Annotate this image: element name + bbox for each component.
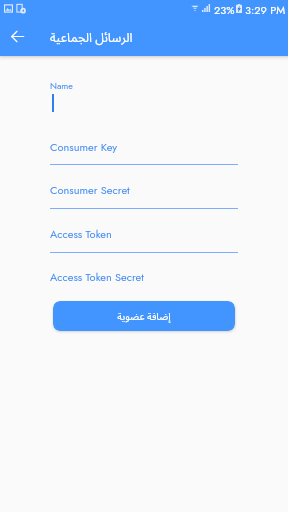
staticText: Name — [50, 79, 73, 92]
staticText: الرسائل الجماعية — [50, 29, 133, 46]
button[interactable]: Back — [3, 22, 31, 50]
staticText: Access Token — [50, 226, 112, 242]
staticText: Consumer Secret — [50, 182, 130, 198]
staticText: 3:29 PM — [245, 2, 286, 18]
staticText: 23% — [214, 2, 235, 18]
staticText: إضافة عضوية — [117, 309, 171, 323]
button[interactable]: إضافة عضوية — [53, 301, 235, 331]
staticText: Consumer Key — [50, 139, 118, 155]
staticText: Access Token Secret — [50, 269, 144, 285]
